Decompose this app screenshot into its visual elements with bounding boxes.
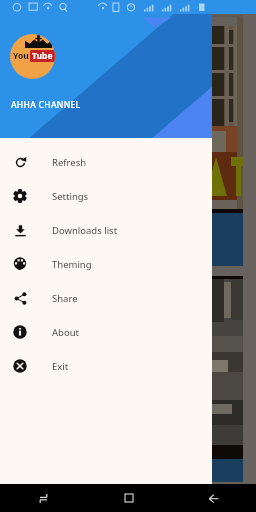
staticText: About: [52, 326, 79, 339]
button[interactable]: Exit: [0, 349, 212, 383]
button[interactable]: Recent apps: [0, 484, 86, 512]
staticText: You: [13, 50, 29, 62]
staticText: Exit: [52, 360, 69, 373]
staticText: Settings: [52, 190, 89, 203]
staticText: Downloads list: [52, 224, 118, 237]
staticText: Share: [52, 292, 78, 305]
staticText: Tube: [32, 50, 53, 62]
button[interactable]: Back: [171, 484, 256, 512]
button[interactable]: Theming: [0, 247, 212, 281]
button[interactable]: Refresh: [0, 145, 212, 179]
staticText: Theming: [52, 258, 92, 271]
button[interactable]: Settings: [0, 179, 212, 213]
button[interactable]: Downloads list: [0, 213, 212, 247]
button[interactable]: About: [0, 315, 212, 349]
button[interactable]: Share: [0, 281, 212, 315]
button[interactable]: Home: [86, 484, 171, 512]
staticText: AHHA CHANNEL: [11, 99, 81, 111]
staticText: Refresh: [52, 156, 87, 169]
